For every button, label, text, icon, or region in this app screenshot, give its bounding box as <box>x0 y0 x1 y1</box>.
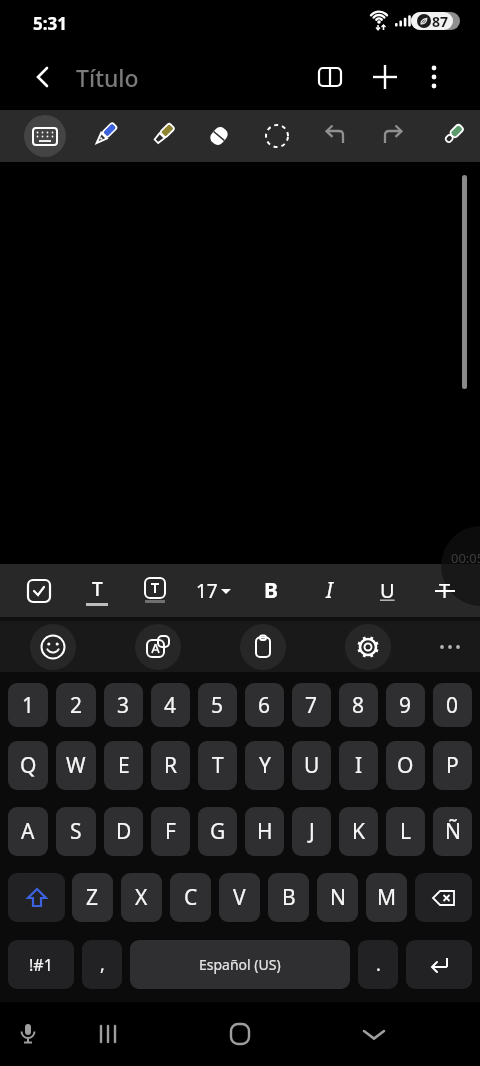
button[interactable]: 17 <box>184 564 242 617</box>
button[interactable] <box>10 1016 46 1052</box>
button[interactable]: H <box>245 807 284 856</box>
button[interactable] <box>356 1016 392 1052</box>
staticText: V <box>233 883 246 912</box>
button[interactable] <box>24 57 64 97</box>
staticText: A <box>21 817 35 846</box>
button[interactable] <box>90 1016 126 1052</box>
staticText: M <box>377 883 397 912</box>
button[interactable] <box>307 54 353 100</box>
button[interactable]: I <box>339 741 378 790</box>
staticText: C <box>184 883 198 912</box>
button[interactable]: R <box>151 741 190 790</box>
button[interactable] <box>431 628 469 666</box>
button[interactable]: B <box>268 873 309 922</box>
button[interactable] <box>414 57 454 97</box>
button[interactable]: L <box>386 807 425 856</box>
staticText: U <box>304 751 320 780</box>
button[interactable] <box>415 873 472 922</box>
staticText: T <box>439 577 451 604</box>
button[interactable]: 0 <box>433 683 472 727</box>
button[interactable] <box>190 110 248 162</box>
button[interactable]: T <box>68 564 126 617</box>
button[interactable] <box>8 873 65 922</box>
button[interactable]: 4 <box>151 683 190 727</box>
staticText: 7 <box>305 691 318 720</box>
button[interactable] <box>406 940 472 989</box>
staticText: . <box>376 952 381 977</box>
button[interactable]: C <box>170 873 211 922</box>
staticText: 00:05 <box>451 549 480 567</box>
button[interactable]: 7 <box>292 683 331 727</box>
staticText: 2 <box>70 691 83 720</box>
staticText: Ñ <box>445 817 461 846</box>
button[interactable]: 8 <box>339 683 378 727</box>
button[interactable]: X <box>121 873 162 922</box>
button[interactable] <box>248 110 306 162</box>
button[interactable]: 2 <box>56 683 96 727</box>
button[interactable]: D <box>104 807 143 856</box>
button[interactable]: G <box>198 807 237 856</box>
button[interactable] <box>74 110 132 162</box>
button[interactable]: 1 <box>8 683 48 727</box>
button[interactable]: V <box>219 873 260 922</box>
button[interactable]: . <box>358 940 398 989</box>
button[interactable]: U <box>358 564 416 617</box>
staticText: H <box>257 817 273 846</box>
button[interactable]: E <box>104 741 143 790</box>
button[interactable] <box>16 110 74 162</box>
button[interactable]: T <box>198 741 237 790</box>
button[interactable]: W <box>56 741 96 790</box>
staticText: 0 <box>446 691 459 720</box>
button[interactable]: Ñ <box>433 807 472 856</box>
staticText: B <box>264 576 278 605</box>
button[interactable]: T <box>416 564 474 617</box>
button[interactable] <box>240 624 286 670</box>
staticText: Y <box>259 751 271 780</box>
staticText: G <box>210 817 226 846</box>
button[interactable] <box>364 110 422 162</box>
staticText: U <box>380 577 395 604</box>
button[interactable]: O <box>386 741 425 790</box>
button[interactable] <box>422 110 480 162</box>
staticText: Z <box>86 883 99 912</box>
button[interactable]: !#1 <box>8 940 74 989</box>
button[interactable]: P <box>433 741 472 790</box>
button[interactable] <box>30 624 76 670</box>
button[interactable]: A <box>8 807 48 856</box>
button[interactable]: F <box>151 807 190 856</box>
button[interactable] <box>362 54 408 100</box>
button[interactable]: Q <box>8 741 48 790</box>
staticText: , <box>100 952 105 977</box>
button[interactable]: Y <box>245 741 284 790</box>
button[interactable]: 6 <box>245 683 284 727</box>
staticText: X <box>135 883 148 912</box>
button[interactable]: I <box>300 564 358 617</box>
staticText: 4 <box>164 691 177 720</box>
button[interactable]: Español (US) <box>130 940 350 989</box>
button[interactable]: N <box>317 873 358 922</box>
staticText: D <box>116 817 132 846</box>
button[interactable] <box>135 624 181 670</box>
button[interactable] <box>132 110 190 162</box>
button[interactable]: 3 <box>104 683 143 727</box>
staticText: F <box>165 817 176 846</box>
staticText: L <box>400 817 412 846</box>
staticText: O <box>397 751 414 780</box>
button[interactable]: S <box>56 807 96 856</box>
staticText: T <box>212 751 224 780</box>
button[interactable]: 5 <box>198 683 237 727</box>
button[interactable]: U <box>292 741 331 790</box>
button[interactable] <box>222 1016 258 1052</box>
button[interactable] <box>126 564 184 617</box>
button[interactable] <box>306 110 364 162</box>
button[interactable]: M <box>366 873 407 922</box>
button[interactable]: B <box>242 564 300 617</box>
staticText: 87 <box>432 12 449 31</box>
button[interactable]: J <box>292 807 331 856</box>
button[interactable]: 9 <box>386 683 425 727</box>
button[interactable] <box>345 624 391 670</box>
button[interactable]: Z <box>72 873 113 922</box>
button[interactable]: , <box>82 940 122 989</box>
button[interactable]: K <box>339 807 378 856</box>
button[interactable] <box>10 564 68 617</box>
